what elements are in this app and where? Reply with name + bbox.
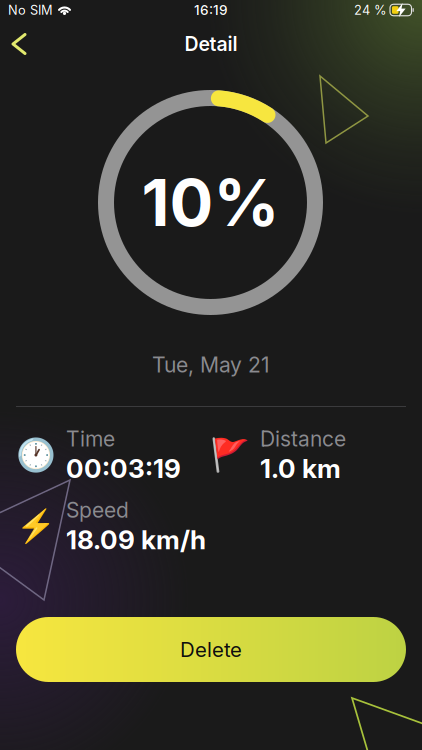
staticText: 10% (141, 163, 279, 242)
staticText: 24 % (354, 2, 387, 18)
staticText: Speed (66, 497, 129, 523)
staticText: 🚩 (210, 437, 250, 473)
staticText: Tue, May 21 (152, 352, 270, 378)
staticText: Distance (260, 426, 346, 451)
staticText: 18.09 km/h (66, 524, 206, 556)
button[interactable]: Delete (16, 617, 406, 682)
staticText: 16:19 (194, 2, 228, 18)
staticText: Time (66, 426, 115, 451)
staticText: 🕐 (16, 437, 56, 473)
staticText: No SIM (8, 2, 53, 18)
staticText: 1.0 km (260, 452, 341, 484)
staticText: Detail (184, 32, 237, 56)
staticText: ⚡ (16, 508, 56, 545)
staticText: 00:03:19 (66, 452, 181, 484)
staticText: Delete (180, 637, 242, 662)
button[interactable]: Back (0, 24, 42, 63)
